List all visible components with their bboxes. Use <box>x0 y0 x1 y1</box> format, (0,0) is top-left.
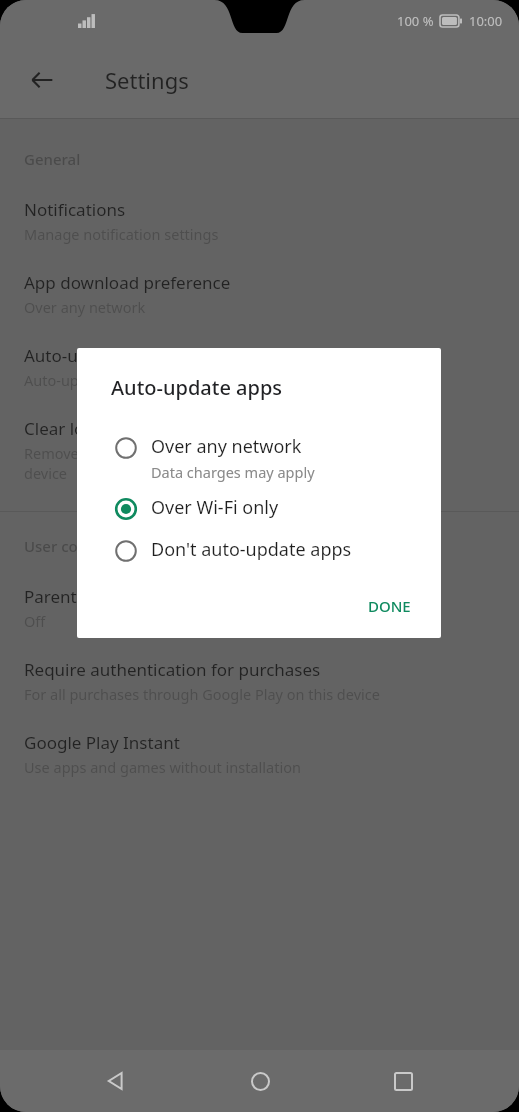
staticText: General <box>24 149 81 169</box>
button[interactable]: Over Wi-Fi only <box>77 488 441 530</box>
button[interactable]: Back <box>20 58 64 102</box>
button[interactable]: Don't auto-update apps <box>77 530 441 572</box>
staticText: Parental controls <box>24 585 160 608</box>
staticText: Require authentication for purchases <box>24 658 321 681</box>
staticText: Google Play Instant <box>24 731 180 754</box>
button[interactable]: Google Play Instant <box>0 720 519 793</box>
button[interactable]: Parental controls <box>0 574 519 647</box>
button[interactable]: Clear local search history <box>0 406 519 499</box>
button[interactable]: App download preference <box>0 260 519 333</box>
button[interactable]: Recent apps <box>375 1053 431 1109</box>
staticText: Manage notification settings <box>24 224 219 244</box>
staticText: Auto-update apps <box>24 344 167 367</box>
button[interactable]: Home <box>232 1053 288 1109</box>
staticText: 100 % <box>397 12 434 30</box>
staticText: For all purchases through Google Play on… <box>24 684 380 704</box>
button[interactable]: Auto-update apps <box>0 333 519 406</box>
staticText: Auto-update apps over Wi-Fi only <box>24 370 250 390</box>
staticText: DONE <box>368 596 411 616</box>
staticText: Over any network <box>151 434 302 459</box>
button[interactable]: DONE <box>356 588 423 624</box>
staticText: App download preference <box>24 271 231 294</box>
staticText: Over any network <box>24 297 146 317</box>
button[interactable]: Over any network <box>77 427 441 488</box>
staticText: Use apps and games without installation <box>24 757 301 777</box>
staticText: Remove all the searches you have perform… <box>24 443 397 483</box>
staticText: Settings <box>105 65 189 95</box>
staticText: 10:00 <box>469 12 503 30</box>
button[interactable]: Back <box>88 1053 144 1109</box>
staticText: Over Wi-Fi only <box>151 495 279 520</box>
button[interactable]: Notifications <box>0 187 519 260</box>
button[interactable]: Require authentication for purchases <box>0 647 519 720</box>
staticText: Notifications <box>24 198 126 221</box>
staticText: Auto-update apps <box>111 374 283 401</box>
staticText: Don't auto-update apps <box>151 537 352 562</box>
staticText: Data charges may apply <box>151 462 315 482</box>
staticText: Clear local search history <box>24 417 224 440</box>
staticText: User controls <box>24 536 120 556</box>
staticText: Off <box>24 611 46 631</box>
